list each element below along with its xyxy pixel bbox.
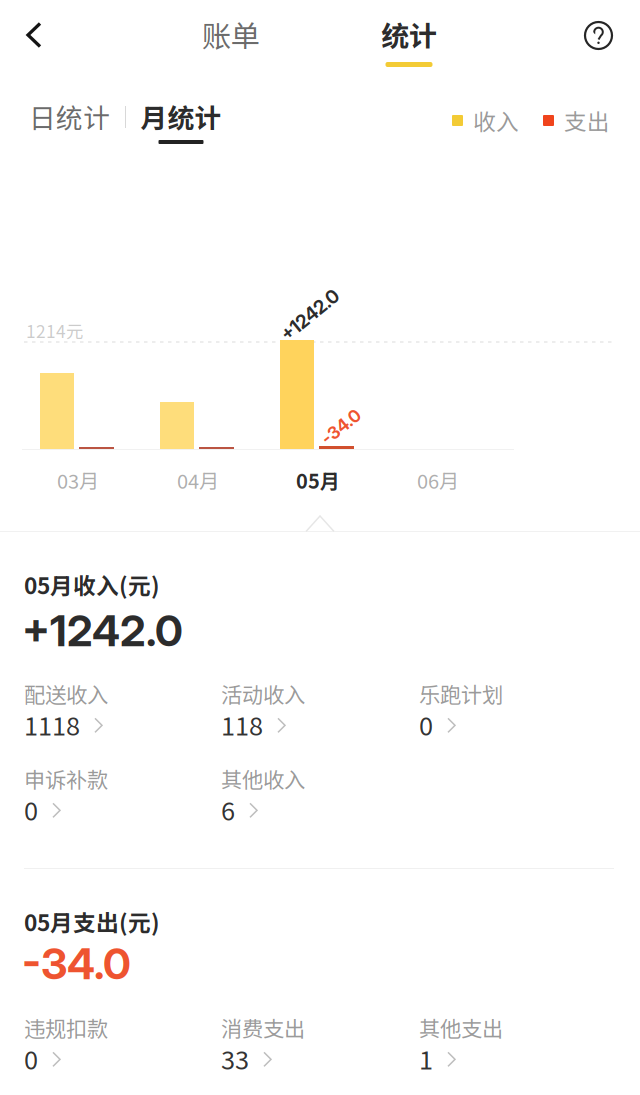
staticText: 0 bbox=[24, 791, 38, 828]
button[interactable]: 消费支出 bbox=[221, 1019, 397, 1085]
button[interactable]: 统计 bbox=[373, 21, 445, 77]
staticText: 05月支出(元) bbox=[24, 905, 160, 938]
staticText: 06月 bbox=[417, 465, 459, 494]
staticText: 乐跑计划 bbox=[419, 678, 503, 709]
staticText: 6 bbox=[221, 791, 235, 828]
staticText: 0 bbox=[24, 1040, 38, 1077]
button[interactable]: 04月 bbox=[150, 463, 246, 497]
staticText: 违规扣款 bbox=[24, 1012, 108, 1043]
staticText: 05月 bbox=[296, 465, 340, 494]
button[interactable]: 05月 bbox=[270, 463, 366, 497]
staticText: +1242.0 bbox=[275, 304, 344, 326]
staticText: 1118 bbox=[24, 706, 80, 743]
staticText: 1214元 bbox=[26, 318, 83, 343]
button[interactable]: Help bbox=[579, 16, 618, 55]
staticText: -34.0 bbox=[22, 938, 131, 990]
staticText: 118 bbox=[221, 706, 263, 743]
staticText: 33 bbox=[221, 1040, 249, 1077]
staticText: 05月收入(元) bbox=[24, 568, 160, 601]
staticText: 月统计 bbox=[140, 97, 221, 136]
staticText: 统计 bbox=[381, 14, 437, 54]
staticText: 其他收入 bbox=[221, 763, 305, 794]
button[interactable]: 违规扣款 bbox=[24, 1019, 200, 1085]
button[interactable]: 日统计 bbox=[23, 91, 116, 142]
staticText: 消费支出 bbox=[221, 1012, 305, 1043]
staticText: 日统计 bbox=[29, 97, 110, 136]
staticText: 收入 bbox=[473, 104, 519, 137]
button[interactable]: 其他支出 bbox=[419, 1019, 595, 1085]
button[interactable]: Back bbox=[18, 14, 50, 56]
staticText: 0 bbox=[419, 706, 433, 743]
button[interactable]: 乐跑计划 bbox=[419, 685, 595, 751]
staticText: 03月 bbox=[57, 465, 99, 494]
staticText: 配送收入 bbox=[24, 678, 108, 709]
staticText: -34.0 bbox=[318, 416, 363, 437]
staticText: 其他支出 bbox=[419, 1012, 503, 1043]
staticText: 支出 bbox=[564, 104, 610, 137]
button[interactable]: 03月 bbox=[30, 463, 126, 497]
staticText: 04月 bbox=[177, 465, 219, 494]
staticText: 活动收入 bbox=[221, 678, 305, 709]
staticText: 账单 bbox=[202, 13, 260, 55]
button[interactable]: 月统计 bbox=[135, 104, 227, 152]
button[interactable]: 申诉补款 bbox=[24, 770, 200, 836]
button[interactable]: 配送收入 bbox=[24, 685, 200, 751]
staticText: 1 bbox=[419, 1040, 433, 1077]
button[interactable]: 06月 bbox=[390, 463, 486, 497]
button[interactable]: 活动收入 bbox=[221, 685, 397, 751]
staticText: 申诉补款 bbox=[24, 763, 108, 794]
button[interactable]: 其他收入 bbox=[221, 770, 397, 836]
button[interactable]: 账单 bbox=[192, 7, 270, 61]
staticText: +1242.0 bbox=[22, 605, 183, 657]
